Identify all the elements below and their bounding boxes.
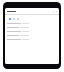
button[interactable] [5,37,59,41]
button[interactable] [5,29,59,33]
button[interactable] [5,25,59,29]
button[interactable] [5,33,59,37]
button[interactable]: Search [5,10,59,12]
button[interactable] [5,21,59,25]
